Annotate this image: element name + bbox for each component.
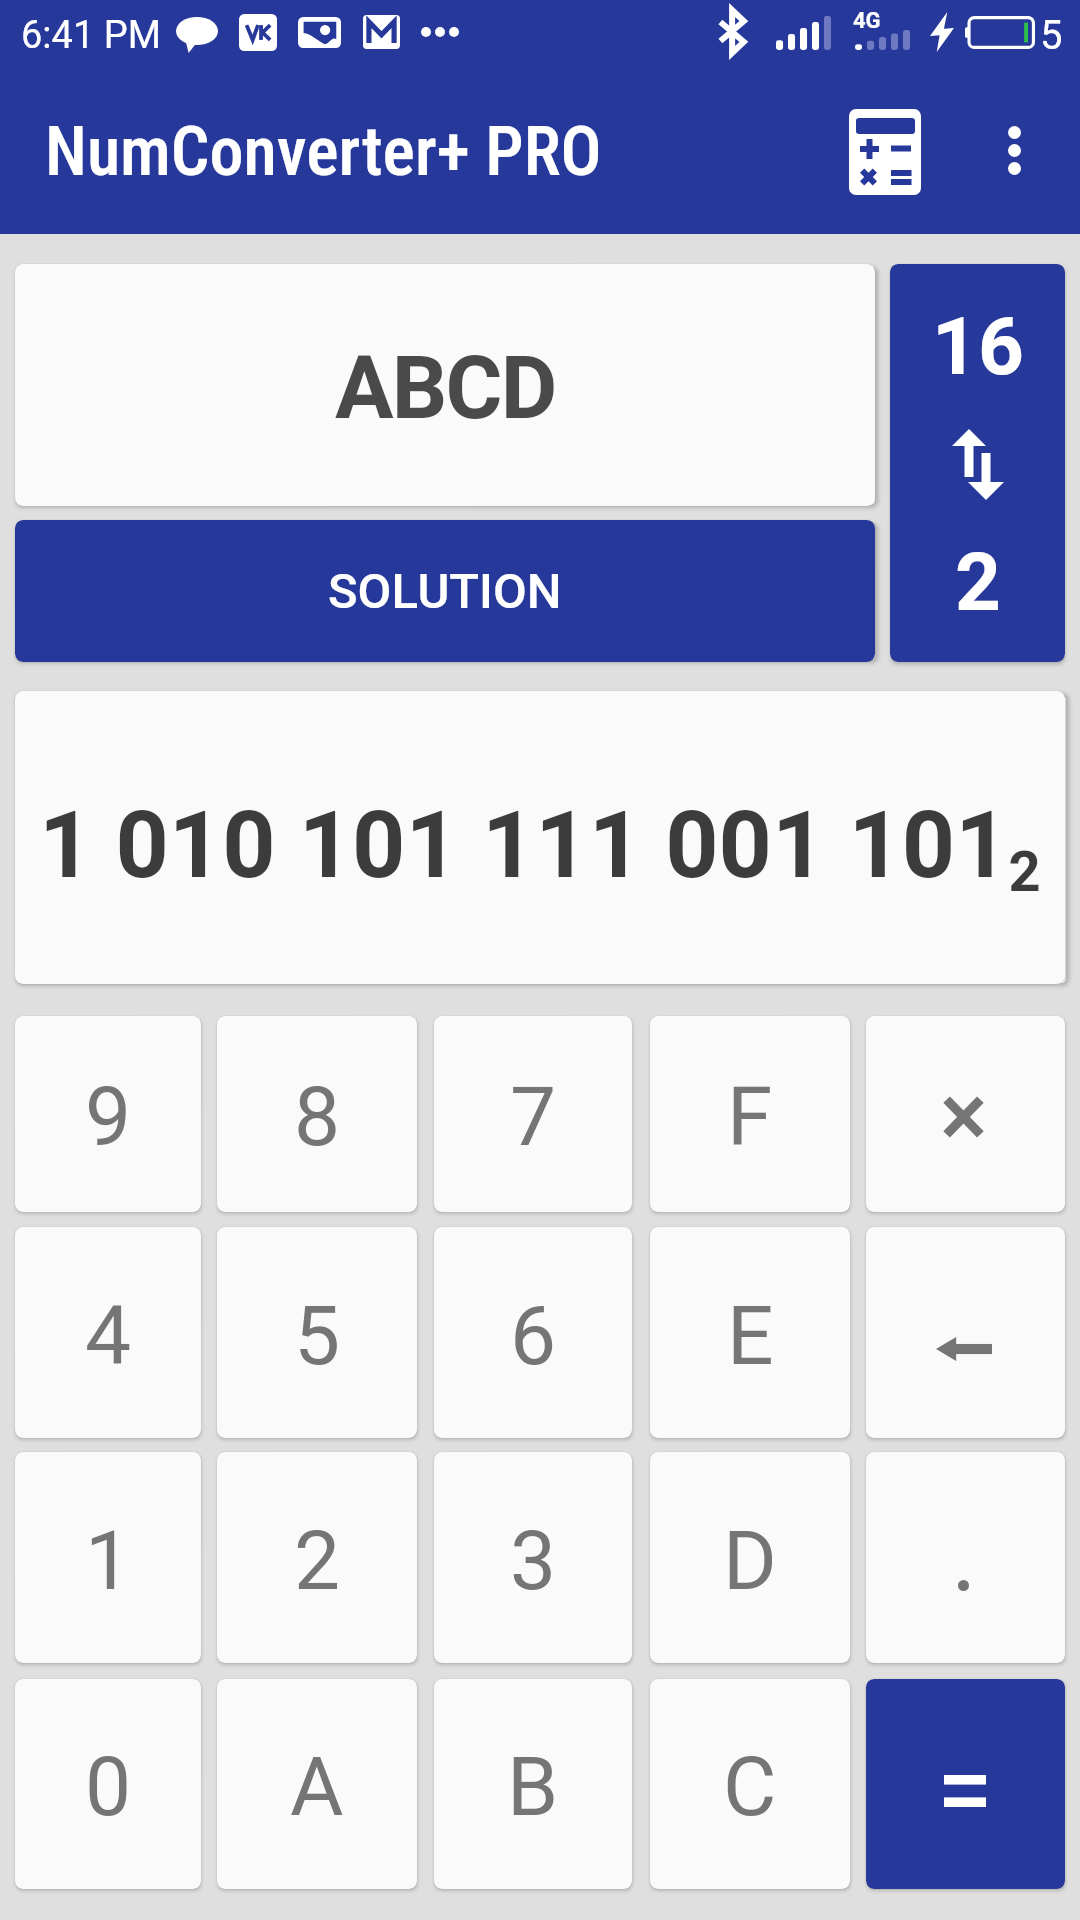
staticText: 5 — [1040, 12, 1063, 59]
staticText: 16 — [932, 300, 1024, 394]
button[interactable]: 16 — [890, 264, 1065, 662]
button[interactable]: 1 010 101 111 001 1012 — [15, 691, 1065, 984]
staticText: 1 — [85, 1513, 132, 1609]
button[interactable]: SOLUTION — [15, 520, 875, 662]
button[interactable]: 9 — [15, 1016, 201, 1212]
staticText: NumConverter+ PRO — [45, 112, 602, 192]
staticText: C — [723, 1739, 777, 1835]
staticText: E — [727, 1288, 774, 1384]
staticText: 1 010 101 111 001 1012 — [39, 791, 1041, 904]
button[interactable]: 8 — [217, 1016, 417, 1212]
staticText: 8 — [294, 1069, 341, 1165]
staticText: 3 — [510, 1513, 557, 1609]
button[interactable]: Decimal point — [866, 1452, 1065, 1663]
staticText: 2 — [294, 1513, 341, 1609]
staticText: F — [727, 1069, 773, 1165]
button[interactable]: 1 — [15, 1452, 201, 1663]
button[interactable]: 2 — [217, 1452, 417, 1663]
button[interactable]: Equals — [866, 1679, 1065, 1889]
button[interactable]: F — [650, 1016, 850, 1212]
staticText: SOLUTION — [328, 563, 562, 620]
button[interactable]: 5 — [217, 1227, 417, 1438]
staticText: 9 — [85, 1069, 132, 1165]
staticText: A — [290, 1739, 344, 1835]
button[interactable]: 0 — [15, 1679, 201, 1889]
staticText: B — [507, 1739, 559, 1835]
button[interactable]: 6 — [434, 1227, 632, 1438]
button[interactable]: Multiply — [866, 1016, 1065, 1212]
staticText: ABCD — [335, 337, 556, 439]
staticText: 6 — [510, 1288, 557, 1384]
staticText: 4 — [85, 1288, 132, 1384]
button[interactable]: Calculator — [823, 90, 947, 214]
button[interactable]: 4 — [15, 1227, 201, 1438]
staticText: 0 — [85, 1739, 132, 1835]
button[interactable]: ABCD — [15, 264, 875, 506]
button[interactable]: A — [217, 1679, 417, 1889]
button[interactable]: B — [434, 1679, 632, 1889]
staticText: 4G — [853, 8, 881, 34]
button[interactable]: E — [650, 1227, 850, 1438]
staticText: D — [723, 1513, 777, 1609]
button[interactable]: Backspace — [866, 1227, 1065, 1438]
staticText: 2 — [955, 536, 1001, 630]
staticText: 7 — [510, 1069, 557, 1165]
button[interactable]: 3 — [434, 1452, 632, 1663]
button[interactable]: C — [650, 1679, 850, 1889]
button[interactable]: More options — [959, 97, 1069, 207]
staticText: 6:41 PM — [21, 13, 161, 58]
button[interactable]: 7 — [434, 1016, 632, 1212]
button[interactable]: D — [650, 1452, 850, 1663]
staticText: 5 — [294, 1288, 341, 1384]
